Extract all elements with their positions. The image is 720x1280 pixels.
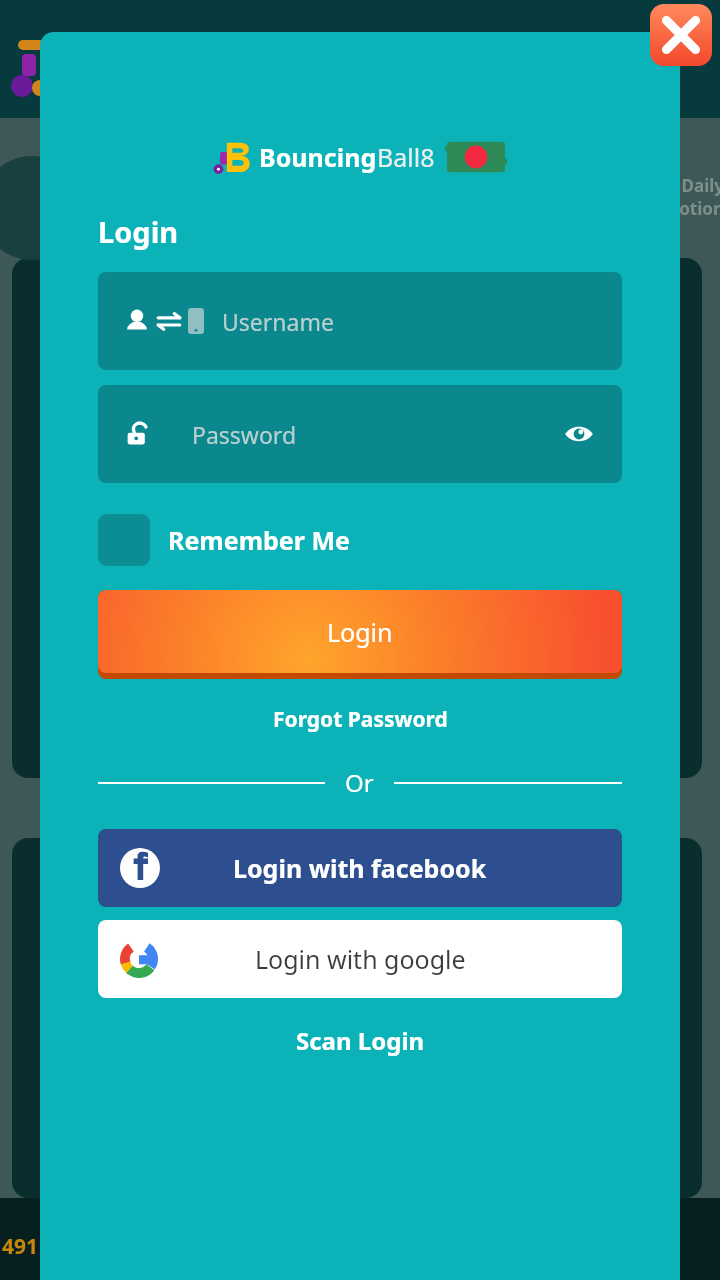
- button[interactable]: Remember Me: [98, 514, 350, 566]
- button[interactable]: Show password: [562, 417, 596, 451]
- button[interactable]: Username: [98, 272, 622, 370]
- staticText: Or: [345, 766, 374, 799]
- staticText: Bouncing: [259, 140, 377, 174]
- staticText: Username: [222, 306, 334, 337]
- button[interactable]: Close: [650, 4, 712, 66]
- staticText: 491: [2, 1232, 39, 1261]
- button[interactable]: Password: [98, 385, 622, 483]
- staticText: Login: [98, 212, 179, 251]
- staticText: Password: [192, 419, 297, 450]
- button[interactable]: Scan Login: [40, 1024, 680, 1057]
- button[interactable]: Login with google: [98, 920, 622, 998]
- staticText: Daily Promotion: [634, 174, 720, 220]
- staticText: Remember Me: [168, 523, 350, 557]
- staticText: Login with google: [255, 942, 466, 976]
- staticText: Forgot Password: [273, 705, 448, 734]
- button[interactable]: Login with facebook: [98, 829, 622, 907]
- button[interactable]: Login: [98, 590, 622, 679]
- staticText: Scan Login: [296, 1024, 425, 1057]
- staticText: Login: [327, 615, 393, 649]
- staticText: Login with facebook: [233, 851, 487, 885]
- staticText: Ball8: [377, 140, 435, 174]
- button[interactable]: Forgot Password: [40, 705, 680, 734]
